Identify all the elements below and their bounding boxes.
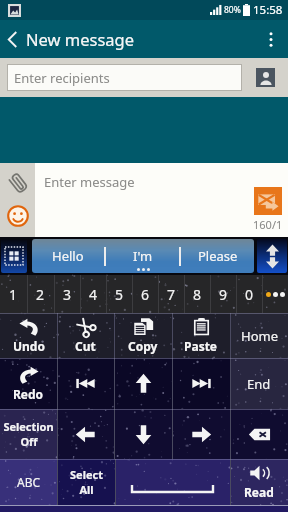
button[interactable]: End: [230, 358, 288, 409]
button[interactable]: More symbols: [262, 275, 288, 313]
staticText: 9: [219, 285, 228, 304]
button[interactable]: 0: [236, 275, 262, 313]
staticText: Enter recipients: [14, 69, 110, 87]
button[interactable]: Attach: [5, 172, 31, 194]
staticText: Undo: [13, 338, 45, 354]
button[interactable]: 7: [158, 275, 184, 313]
button[interactable]: 9: [210, 275, 236, 313]
button[interactable]: Select: [57, 459, 115, 505]
button[interactable]: Keyboard layout: [1, 239, 27, 273]
staticText: 160/1: [253, 217, 283, 232]
button[interactable]: Read: [230, 459, 288, 505]
staticText: Select: [70, 467, 103, 482]
button[interactable]: Please: [181, 239, 254, 273]
button[interactable]: Move left: [57, 409, 114, 459]
button[interactable]: Undo: [0, 313, 57, 358]
button[interactable]: Redo: [0, 358, 57, 409]
button[interactable]: 6: [132, 275, 158, 313]
staticText: 2: [36, 285, 45, 304]
button[interactable]: Emoji: [6, 204, 30, 228]
staticText: Paste: [184, 338, 218, 354]
button[interactable]: Selection: [0, 409, 57, 459]
staticText: Off: [20, 434, 38, 449]
staticText: Enter message: [44, 173, 135, 191]
staticText: Please: [198, 247, 238, 265]
staticText: ABC: [17, 474, 41, 490]
staticText: New message: [26, 28, 135, 50]
button[interactable]: Rewind: [57, 358, 114, 409]
staticText: 7: [167, 285, 176, 304]
staticText: 3: [63, 285, 72, 304]
staticText: Hello: [52, 247, 84, 265]
button[interactable]: Fast forward: [172, 358, 230, 409]
staticText: End: [247, 375, 271, 393]
button[interactable]: 3: [54, 275, 80, 313]
button[interactable]: Cut: [57, 313, 114, 358]
button[interactable]: Enter recipients: [7, 64, 242, 91]
button[interactable]: ABC: [0, 459, 57, 505]
button[interactable]: 8: [184, 275, 210, 313]
button[interactable]: Back: [0, 20, 24, 58]
button[interactable]: Backspace: [230, 409, 288, 459]
button[interactable]: 5: [106, 275, 132, 313]
button[interactable]: 4: [80, 275, 106, 313]
staticText: Cut: [75, 338, 96, 354]
button[interactable]: Space: [115, 459, 230, 505]
button[interactable]: Expand keyboard: [257, 239, 287, 273]
button[interactable]: More options: [256, 20, 286, 58]
button[interactable]: I'm: [106, 239, 179, 273]
staticText: Read: [244, 484, 274, 500]
staticText: Copy: [128, 338, 158, 354]
button[interactable]: 2: [27, 275, 54, 313]
staticText: Home: [241, 327, 278, 345]
staticText: All: [79, 482, 94, 497]
staticText: 1: [9, 285, 18, 304]
button[interactable]: Paste: [172, 313, 230, 358]
button[interactable]: Send: [254, 187, 282, 215]
staticText: 0: [245, 285, 254, 304]
staticText: 15:58: [253, 2, 283, 18]
button[interactable]: 1: [0, 275, 27, 313]
button[interactable]: Contacts: [256, 68, 275, 87]
staticText: 80%: [224, 4, 241, 16]
staticText: Redo: [13, 386, 44, 402]
button[interactable]: Enter message: [35, 163, 250, 237]
button[interactable]: Hello: [32, 239, 104, 273]
staticText: 8: [193, 285, 202, 304]
staticText: Selection: [3, 419, 54, 434]
button[interactable]: Home: [230, 313, 288, 358]
staticText: 5: [115, 285, 124, 304]
staticText: 4: [89, 285, 98, 304]
staticText: 6: [141, 285, 150, 304]
button[interactable]: Copy: [114, 313, 172, 358]
button[interactable]: Move up: [114, 358, 172, 409]
button[interactable]: Move right: [172, 409, 230, 459]
button[interactable]: Move down: [114, 409, 172, 459]
staticText: I'm: [133, 247, 153, 265]
